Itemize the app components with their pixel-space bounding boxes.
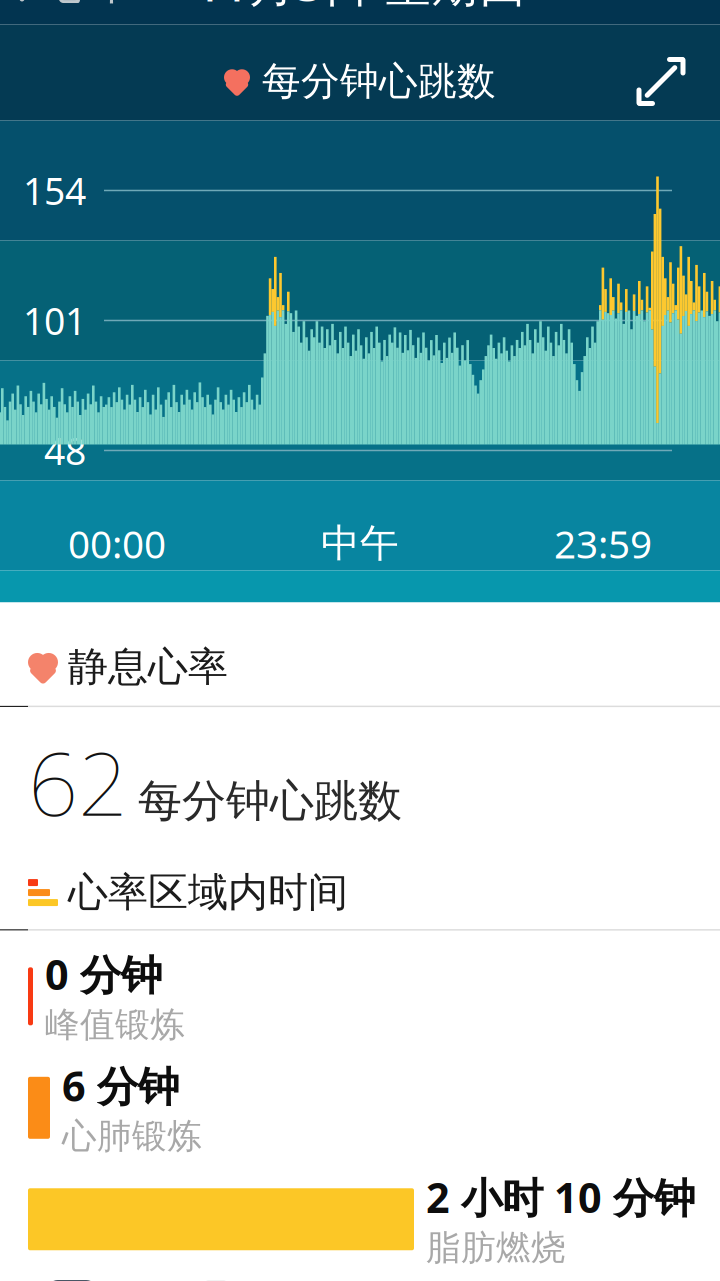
staticText: 00:00 — [68, 518, 166, 569]
staticText: 2 小时 10 分钟 — [426, 1169, 695, 1224]
staticText: 23:59 — [554, 518, 652, 569]
staticText: 每分钟心跳数 — [262, 58, 496, 105]
staticText: 峰值锻炼 — [45, 1003, 185, 1046]
staticText: 6 分钟 — [62, 1058, 179, 1113]
staticText: 静息心率 — [68, 642, 228, 692]
staticText: 11月3日 星期四 — [195, 0, 525, 14]
staticText: 脂肪燃烧 — [426, 1226, 566, 1269]
staticText: 心肺锻炼 — [62, 1115, 202, 1158]
staticText: 中午 — [321, 520, 399, 567]
button[interactable]: 全屏 — [626, 46, 696, 116]
staticText: 101 — [23, 296, 86, 345]
staticText: 154 — [23, 166, 86, 215]
staticText: 0 分钟 — [45, 947, 162, 1001]
staticText: 48 — [44, 426, 86, 475]
staticText: 62 — [28, 723, 128, 840]
button[interactable]: 心率 — [0, 0, 150, 20]
staticText: 心率区域内时间 — [68, 868, 348, 917]
staticText: 每分钟心跳数 — [138, 774, 402, 828]
staticText: 心率 — [46, 0, 134, 10]
